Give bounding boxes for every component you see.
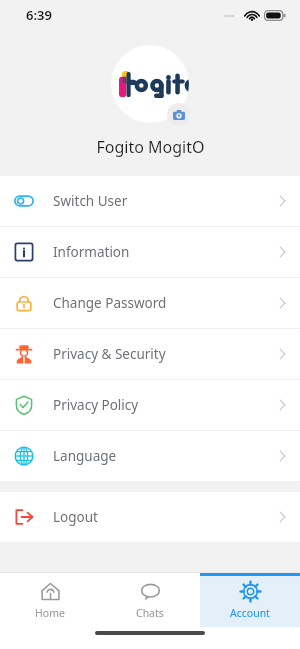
staticText: Privacy Policy <box>53 396 139 414</box>
button[interactable]: Change photo <box>167 103 190 126</box>
staticText: Privacy & Security <box>53 345 166 363</box>
button[interactable]: Privacy Policy <box>0 380 300 430</box>
staticText: Information <box>53 243 130 261</box>
staticText: Language <box>53 447 117 465</box>
staticText: Account <box>230 606 270 620</box>
staticText: Chats <box>136 606 164 620</box>
staticText: Fogito MogitO <box>96 136 205 158</box>
button[interactable]: Switch User <box>0 176 300 226</box>
button[interactable]: Logout <box>0 492 300 542</box>
staticText: Home <box>35 606 65 620</box>
button[interactable]: Information <box>0 227 300 277</box>
staticText: 6:39 <box>26 6 52 24</box>
button[interactable]: Profile photo <box>111 45 189 123</box>
button[interactable]: Account <box>200 573 300 627</box>
staticText: Logout <box>53 508 98 526</box>
button[interactable]: Privacy & Security <box>0 329 300 379</box>
button[interactable]: Change Password <box>0 278 300 328</box>
button[interactable]: Chats <box>100 573 200 627</box>
staticText: Change Password <box>53 294 167 312</box>
button[interactable]: Language <box>0 431 300 481</box>
button[interactable]: Home <box>0 573 100 627</box>
staticText: Switch User <box>53 192 128 210</box>
